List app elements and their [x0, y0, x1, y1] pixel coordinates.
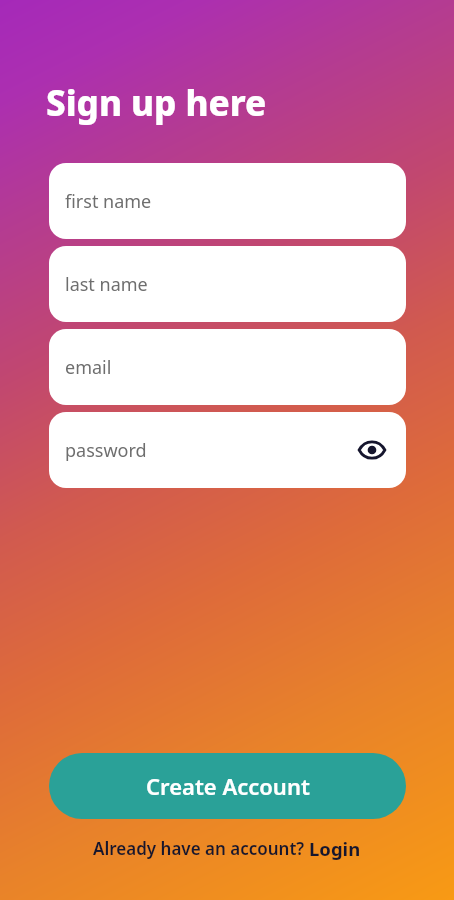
staticText: Already have an account? [93, 837, 309, 860]
staticText: email [65, 355, 112, 380]
staticText: last name [65, 272, 148, 297]
button[interactable]: last name [49, 246, 406, 322]
staticText: Create Account [146, 771, 310, 801]
button[interactable]: Show password [354, 432, 390, 468]
button[interactable]: first name [49, 163, 406, 239]
button[interactable]: password [49, 412, 406, 488]
button[interactable]: Already have an account? [0, 833, 454, 863]
button[interactable]: Create Account [49, 753, 406, 819]
staticText: Sign up here [46, 79, 267, 127]
staticText: Login [309, 836, 361, 861]
staticText: first name [65, 189, 152, 214]
button[interactable]: email [49, 329, 406, 405]
staticText: password [65, 438, 147, 463]
